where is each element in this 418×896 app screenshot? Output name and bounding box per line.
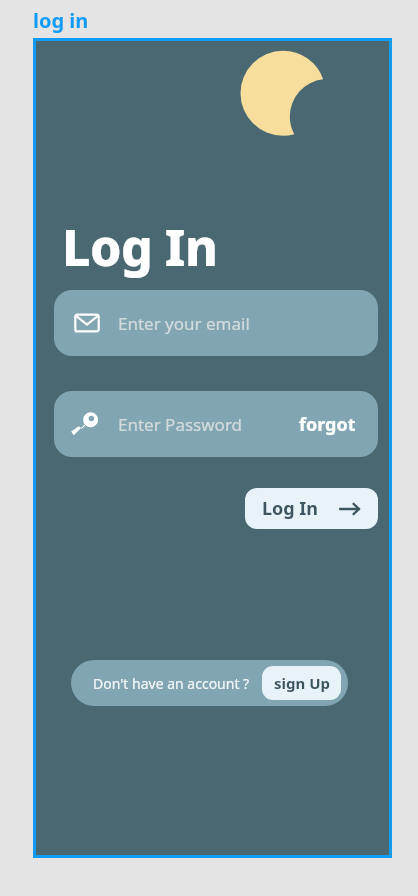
staticText: Don't have an account ?: [93, 674, 250, 693]
staticText: Enter your email: [118, 312, 250, 335]
staticText: Enter Password: [118, 413, 243, 436]
button[interactable]: Sign Up: [262, 666, 341, 700]
button[interactable]: Enter your email: [54, 290, 378, 356]
staticText: Log In: [262, 496, 319, 521]
staticText: log in: [33, 7, 89, 34]
staticText: forgot: [299, 412, 356, 437]
button[interactable]: forgot: [299, 412, 356, 437]
button[interactable]: Enter Password: [54, 391, 378, 457]
button[interactable]: Log In: [245, 488, 378, 529]
staticText: Log In: [62, 213, 218, 281]
staticText: sign Up: [274, 673, 330, 693]
